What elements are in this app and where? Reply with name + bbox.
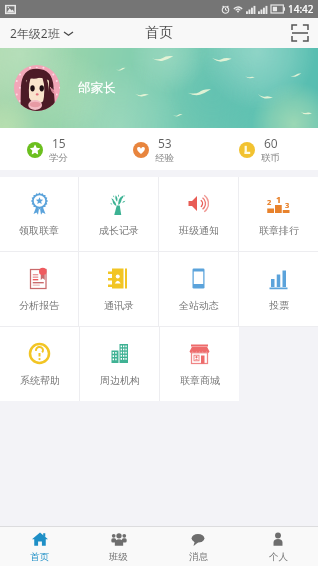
staticText: 班级通知 (179, 224, 219, 237)
button[interactable]: 通讯录 (79, 252, 158, 326)
staticText: 53 (158, 135, 172, 151)
staticText: 学分 (49, 152, 68, 164)
button[interactable]: Profile avatar (14, 65, 60, 111)
staticText: 首页 (145, 24, 173, 42)
button[interactable]: 60 (212, 135, 318, 164)
button[interactable]: 首页 (0, 527, 79, 566)
staticText: 个人 (269, 551, 288, 563)
button[interactable]: 成长记录 (79, 177, 158, 251)
staticText: 班级 (109, 551, 128, 563)
button[interactable]: Scan QR code (282, 25, 318, 41)
button[interactable]: 个人 (238, 527, 318, 566)
button[interactable]: 15 (0, 135, 106, 164)
staticText: 投票 (269, 299, 289, 312)
button[interactable]: 系统帮助 (0, 327, 79, 401)
staticText: 全站动态 (179, 299, 219, 312)
staticText: 周边机构 (100, 374, 140, 387)
staticText: 领取联章 (19, 224, 59, 237)
staticText: 2 (267, 197, 272, 207)
staticText: 邰家长 (78, 80, 116, 96)
staticText: 消息 (189, 551, 208, 563)
staticText: 联章商城 (180, 374, 220, 387)
staticText: 1 (276, 193, 282, 205)
staticText: 通讯录 (104, 299, 134, 312)
button[interactable]: 53 (106, 135, 212, 164)
button[interactable]: 2年级2班 (0, 25, 79, 41)
button[interactable]: 投票 (239, 252, 318, 326)
staticText: 3 (285, 200, 290, 210)
staticText: 60 (264, 135, 278, 151)
button[interactable]: 消息 (158, 527, 238, 566)
button[interactable]: 联章商城 (160, 327, 239, 401)
button[interactable]: 领取联章 (0, 177, 78, 251)
button[interactable]: 分析报告 (0, 252, 78, 326)
staticText: 2年级2班 (10, 25, 60, 41)
staticText: 首页 (30, 551, 49, 563)
staticText: 系统帮助 (20, 374, 60, 387)
staticText: 15 (52, 135, 66, 151)
button[interactable]: 周边机构 (80, 327, 159, 401)
button[interactable]: 班级通知 (159, 177, 238, 251)
staticText: 联币 (261, 152, 280, 164)
staticText: 联章排行 (259, 224, 299, 237)
button[interactable]: 1 (239, 177, 318, 251)
staticText: 成长记录 (99, 224, 139, 237)
staticText: 经验 (155, 152, 174, 164)
staticText: 14:42 (288, 2, 314, 16)
staticText: 分析报告 (19, 299, 59, 312)
button[interactable]: 全站动态 (159, 252, 238, 326)
button[interactable]: 班级 (79, 527, 158, 566)
